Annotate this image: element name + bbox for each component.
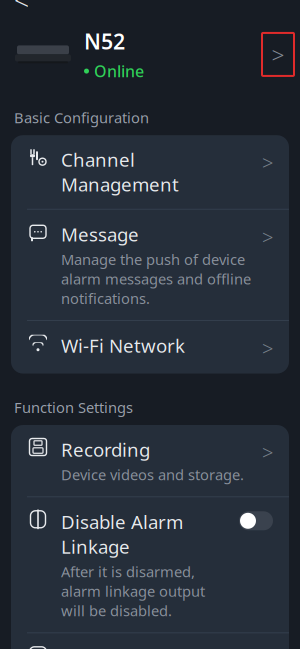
staticText: > [262,149,273,176]
staticText: Wi-Fi Network [61,333,185,358]
button[interactable]: Wi-Fi Network [11,321,289,374]
staticText: > [262,224,273,250]
staticText: Disable Alarm Linkage [61,509,183,559]
staticText: Channel Management [61,147,179,197]
button[interactable]: Message [11,210,289,320]
button[interactable]: Recording [11,425,289,496]
button[interactable]: Back [0,0,48,17]
staticText: Basic Configuration [14,108,149,127]
button[interactable]: Device details [262,33,294,76]
staticText: N52 [84,27,125,55]
staticText: Message [61,222,139,247]
button[interactable]: Channel Management [11,135,289,209]
staticText: Manage the push of device alarm messages… [61,250,251,308]
staticText: > [271,39,284,69]
staticText: < [14,0,29,18]
staticText: Online [94,60,144,82]
staticText: After it is disarmed, alarm linkage outp… [61,562,205,620]
staticText: Function Settings [14,398,133,417]
staticText: Device videos and storage. [61,465,244,484]
button[interactable]: Disable Alarm Linkage [11,497,289,632]
staticText: > [262,439,273,466]
button[interactable]: More [11,633,289,649]
staticText: > [262,335,273,362]
staticText: Recording [61,437,150,462]
